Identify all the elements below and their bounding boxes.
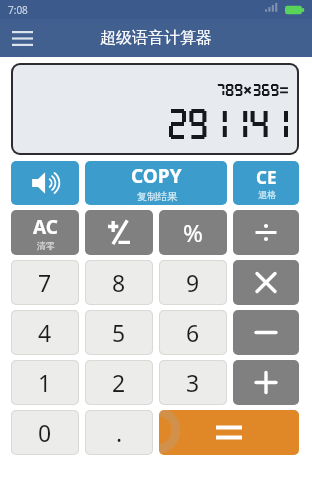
button[interactable]: 8	[86, 261, 152, 304]
button[interactable]: CE	[233, 161, 299, 205]
button[interactable]: .	[86, 411, 152, 454]
staticText: 退格	[258, 189, 276, 200]
staticText: 超级语音计算器	[100, 28, 212, 48]
staticText: 9	[186, 267, 200, 298]
staticText: %	[183, 216, 203, 249]
button[interactable]: Divide	[233, 210, 299, 255]
button[interactable]: 2	[86, 361, 152, 404]
button[interactable]: Add	[233, 360, 299, 405]
button[interactable]: Menu	[7, 23, 37, 53]
button[interactable]: COPY	[85, 161, 227, 205]
staticText: 5	[112, 317, 126, 348]
staticText: 复制结果	[137, 190, 177, 203]
button[interactable]: Plus minus sign	[85, 210, 153, 255]
staticText: 2	[112, 367, 126, 398]
staticText: 清零	[37, 240, 55, 251]
button[interactable]: Percent	[159, 210, 227, 255]
staticText: 4	[38, 317, 52, 348]
button[interactable]: 1	[12, 361, 78, 404]
button[interactable]: 5	[86, 311, 152, 354]
staticText: 0	[38, 417, 52, 448]
staticText: 8	[112, 267, 126, 298]
staticText: CE	[256, 166, 277, 189]
button[interactable]: AC	[11, 210, 79, 255]
staticText: 7	[38, 267, 52, 298]
button[interactable]: Subtract	[233, 310, 299, 355]
button[interactable]: 9	[160, 261, 226, 304]
staticText: 7:08	[8, 3, 28, 17]
button[interactable]: 0	[12, 411, 78, 454]
button[interactable]: Speak result	[11, 161, 79, 205]
staticText: 3	[186, 367, 200, 398]
button[interactable]: 6	[160, 311, 226, 354]
button[interactable]: Multiply	[233, 260, 299, 305]
staticText: .	[116, 417, 123, 448]
staticText: AC	[33, 214, 58, 240]
staticText: COPY	[131, 163, 182, 189]
button[interactable]: 3	[160, 361, 226, 404]
staticText: 1	[38, 367, 52, 398]
button[interactable]: Equals	[159, 410, 299, 455]
staticText: 6	[186, 317, 200, 348]
button[interactable]: 7	[12, 261, 78, 304]
button[interactable]: 4	[12, 311, 78, 354]
